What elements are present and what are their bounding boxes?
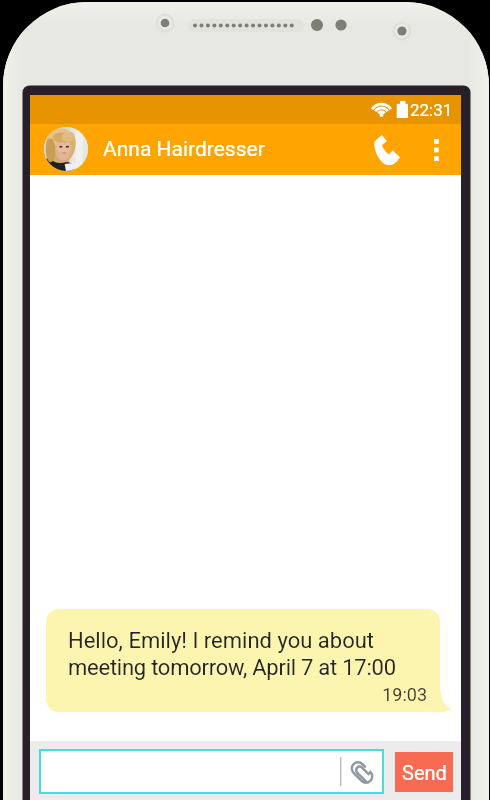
staticText: Send — [402, 761, 447, 784]
staticText: Anna Hairdresser — [103, 137, 265, 162]
button[interactable]: Attach file — [345, 755, 379, 789]
staticText: Hello, Emily! I remind you about — [68, 628, 375, 654]
button[interactable]: Call — [361, 124, 413, 175]
button[interactable]: Anna Hairdresser profile photo — [44, 127, 88, 171]
button[interactable]: More options — [415, 129, 457, 171]
button[interactable]: Send — [395, 752, 453, 792]
staticText: meeting tomorrow, April 7 at 17:00 — [68, 655, 396, 681]
staticText: 22:31 — [410, 100, 453, 120]
button[interactable]: Message input field — [41, 751, 382, 792]
staticText: 19:03 — [46, 684, 427, 705]
